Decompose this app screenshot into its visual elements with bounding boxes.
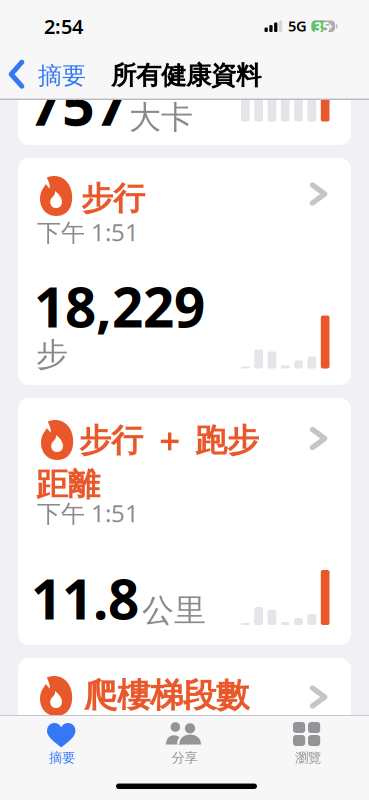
staticText: 步行	[81, 179, 145, 218]
staticText: 摘要	[49, 749, 75, 766]
staticText: 下午 1:51	[37, 216, 139, 248]
staticText: 距離	[36, 465, 100, 504]
staticText: 大卡	[129, 98, 193, 137]
staticText: 18,229	[34, 270, 205, 343]
button[interactable]: 摘要	[0, 0, 90, 44]
button[interactable]: 步行 + 跑步距離 11.8 公里	[18, 398, 351, 645]
staticText: 摘要	[38, 61, 86, 90]
staticText: 瀏覽	[295, 749, 321, 766]
staticText: 步	[36, 335, 68, 374]
button[interactable]: 瀏覽	[260, 715, 355, 765]
button[interactable]: 爬樓梯段數	[18, 658, 351, 800]
button[interactable]: 分享	[137, 715, 232, 765]
staticText: 757	[29, 65, 128, 142]
staticText: 11.8	[31, 562, 139, 635]
staticText: 35	[314, 18, 330, 36]
button[interactable]: 熱量 757 大卡	[18, 58, 351, 145]
staticText: 2:54	[44, 13, 83, 40]
staticText: 所有健康資料	[111, 60, 261, 91]
staticText: 下午 1:51	[37, 497, 139, 529]
button[interactable]: 摘要	[14, 715, 109, 765]
staticText: 公里	[142, 591, 206, 630]
staticText: 分享	[171, 749, 197, 766]
staticText: 步行 ＋ 跑步	[79, 421, 259, 460]
button[interactable]: 步行 18,229 步	[18, 158, 351, 385]
staticText: 5G	[288, 16, 307, 35]
staticText: 爬樓梯段數	[84, 675, 249, 716]
